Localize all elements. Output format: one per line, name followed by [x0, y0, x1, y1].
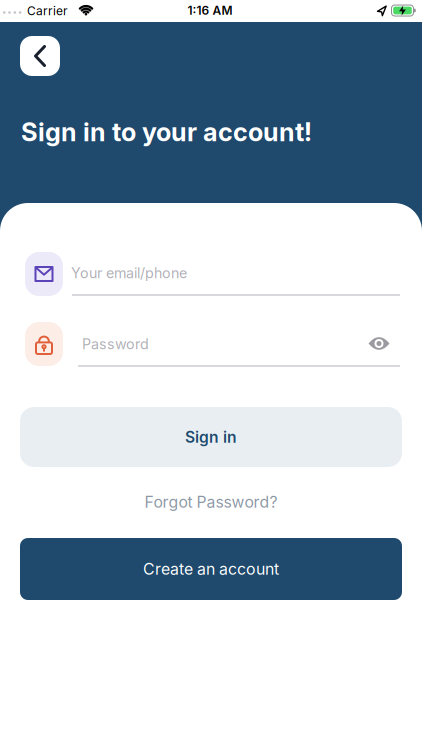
staticText: 1:16 AM [187, 3, 232, 18]
staticText: Carrier [27, 4, 68, 18]
staticText: Sign in to your account! [21, 117, 312, 147]
button[interactable]: Show password [365, 331, 393, 355]
button[interactable]: Create an account [20, 538, 402, 600]
staticText: Create an account [143, 559, 279, 579]
button[interactable]: Back [20, 36, 60, 76]
staticText: Your email/phone [71, 264, 187, 282]
staticText: Forgot Password? [144, 492, 277, 511]
button[interactable]: Sign in [20, 407, 402, 467]
staticText: Password [82, 335, 149, 353]
staticText: Sign in [185, 428, 237, 446]
button[interactable]: Forgot Password? [144, 492, 277, 511]
